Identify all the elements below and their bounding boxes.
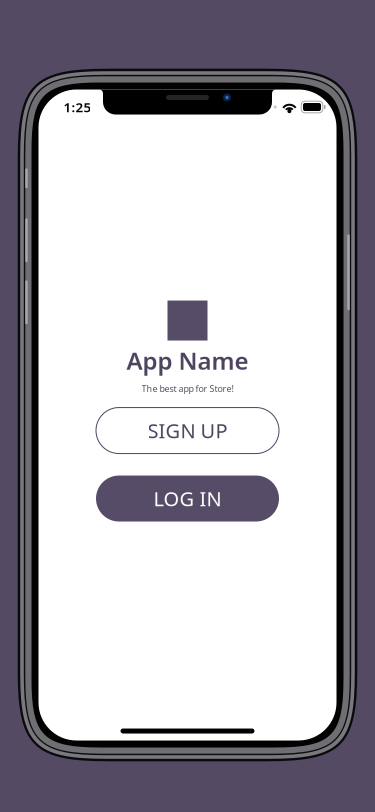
staticText: LOG IN [153, 485, 221, 512]
staticText: The best app for Store! [141, 382, 233, 395]
staticText: 1:25 [63, 98, 91, 116]
button[interactable]: SIGN UP [96, 407, 279, 453]
staticText: SIGN UP [147, 417, 227, 444]
button[interactable]: LOG IN [96, 475, 279, 521]
staticText: App Name [126, 344, 248, 376]
